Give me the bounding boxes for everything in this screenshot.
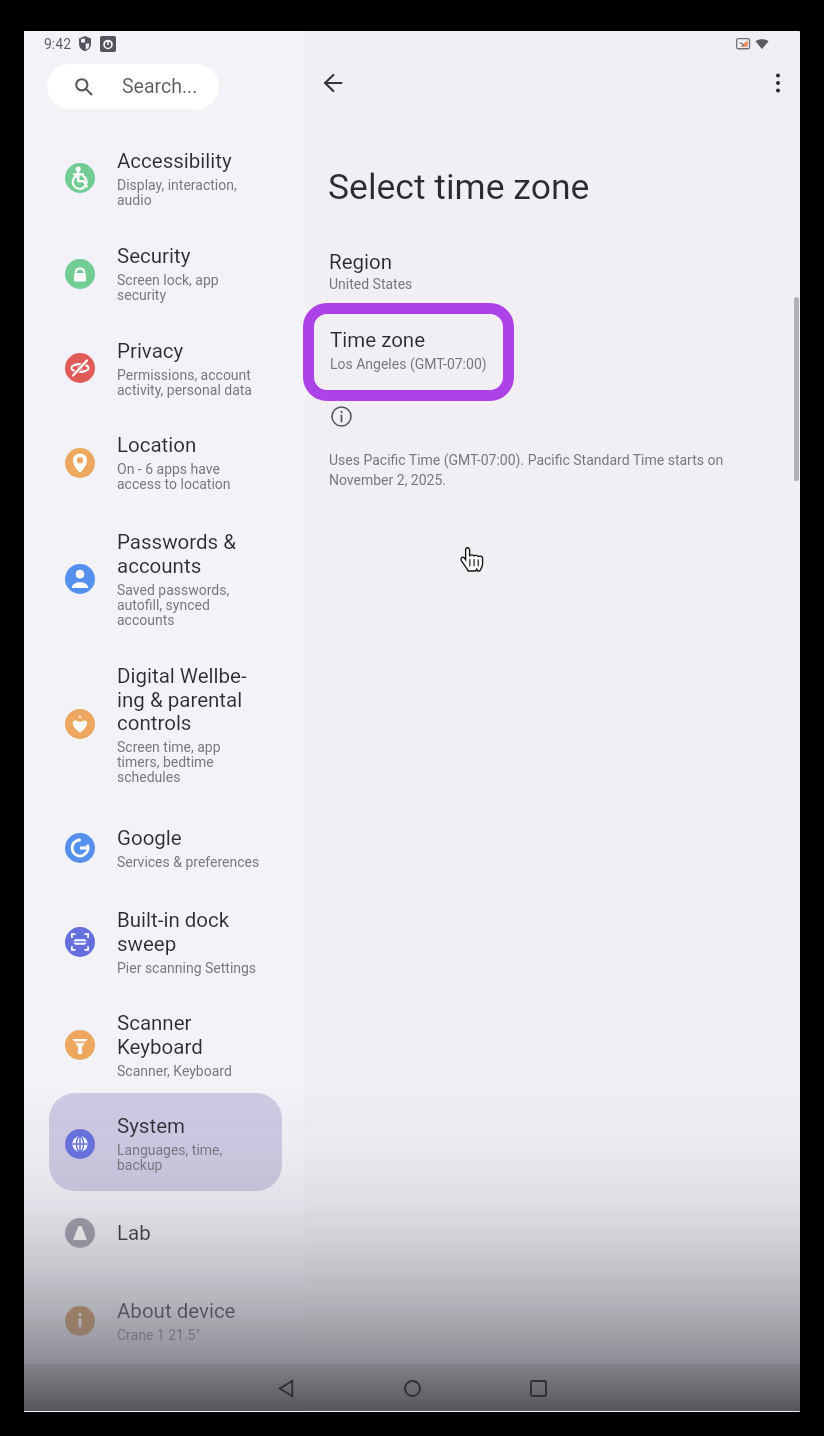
button[interactable]: More options: [755, 60, 800, 106]
button[interactable]: Search...: [47, 64, 219, 109]
staticText: Time zone: [330, 328, 426, 352]
staticText: Crane 1 21.5": [117, 1327, 200, 1343]
button[interactable]: [40, 1094, 290, 1192]
staticText: Los Angeles (GMT-07:00): [330, 356, 487, 372]
staticText: On - 6 apps have access to location: [117, 461, 260, 492]
staticText: Languages, time, backup: [117, 1142, 260, 1173]
button[interactable]: [40, 413, 290, 511]
button[interactable]: Back: [310, 60, 356, 106]
staticText: Uses Pacific Time (GMT-07:00). Pacific S…: [329, 452, 729, 489]
staticText: 9:42: [44, 36, 71, 52]
staticText: Permissions, account activity, personal …: [117, 367, 260, 398]
staticText: Scanner, Keyboard: [117, 1063, 232, 1079]
staticText: Search...: [122, 75, 198, 98]
staticText: Region: [329, 250, 393, 274]
button[interactable]: [40, 675, 290, 773]
staticText: Location: [117, 433, 197, 457]
staticText: Accessibility: [117, 149, 232, 173]
staticText: Display, interaction, audio: [117, 177, 260, 208]
button[interactable]: [320, 245, 580, 297]
button[interactable]: [40, 319, 290, 417]
staticText: Pier scanning Settings: [117, 960, 257, 976]
staticText: Screen lock, app security: [117, 272, 260, 303]
staticText: Select time zone: [328, 166, 590, 208]
staticText: Lab: [117, 1221, 151, 1245]
staticText: About device: [117, 1299, 236, 1323]
button[interactable]: [40, 1184, 290, 1282]
staticText: Google: [117, 826, 182, 850]
staticText: Security: [117, 244, 191, 268]
staticText: Privacy: [117, 339, 184, 363]
staticText: Saved passwords, autofill, synced accoun…: [117, 582, 260, 628]
staticText: Services & preferences: [117, 854, 260, 870]
button[interactable]: [40, 224, 290, 322]
staticText: System: [117, 1114, 186, 1138]
staticText: United States: [329, 276, 413, 292]
button[interactable]: [40, 129, 290, 227]
button[interactable]: Back: [264, 1366, 308, 1410]
staticText: Passwords & accounts: [117, 530, 260, 578]
staticText: Built-in dock sweep: [117, 908, 260, 956]
staticText: Screen time, app timers, bedtime schedul…: [117, 739, 260, 785]
button[interactable]: [303, 303, 514, 401]
button[interactable]: [40, 799, 290, 897]
button[interactable]: [40, 530, 290, 628]
button[interactable]: [40, 893, 290, 991]
button[interactable]: [40, 1272, 290, 1370]
button[interactable]: Recents: [516, 1366, 560, 1410]
button[interactable]: Home: [390, 1366, 434, 1410]
staticText: Digital Wellbe- ing & parental controls: [117, 664, 247, 735]
button[interactable]: [40, 996, 290, 1094]
staticText: Scanner Keyboard: [117, 1011, 260, 1059]
